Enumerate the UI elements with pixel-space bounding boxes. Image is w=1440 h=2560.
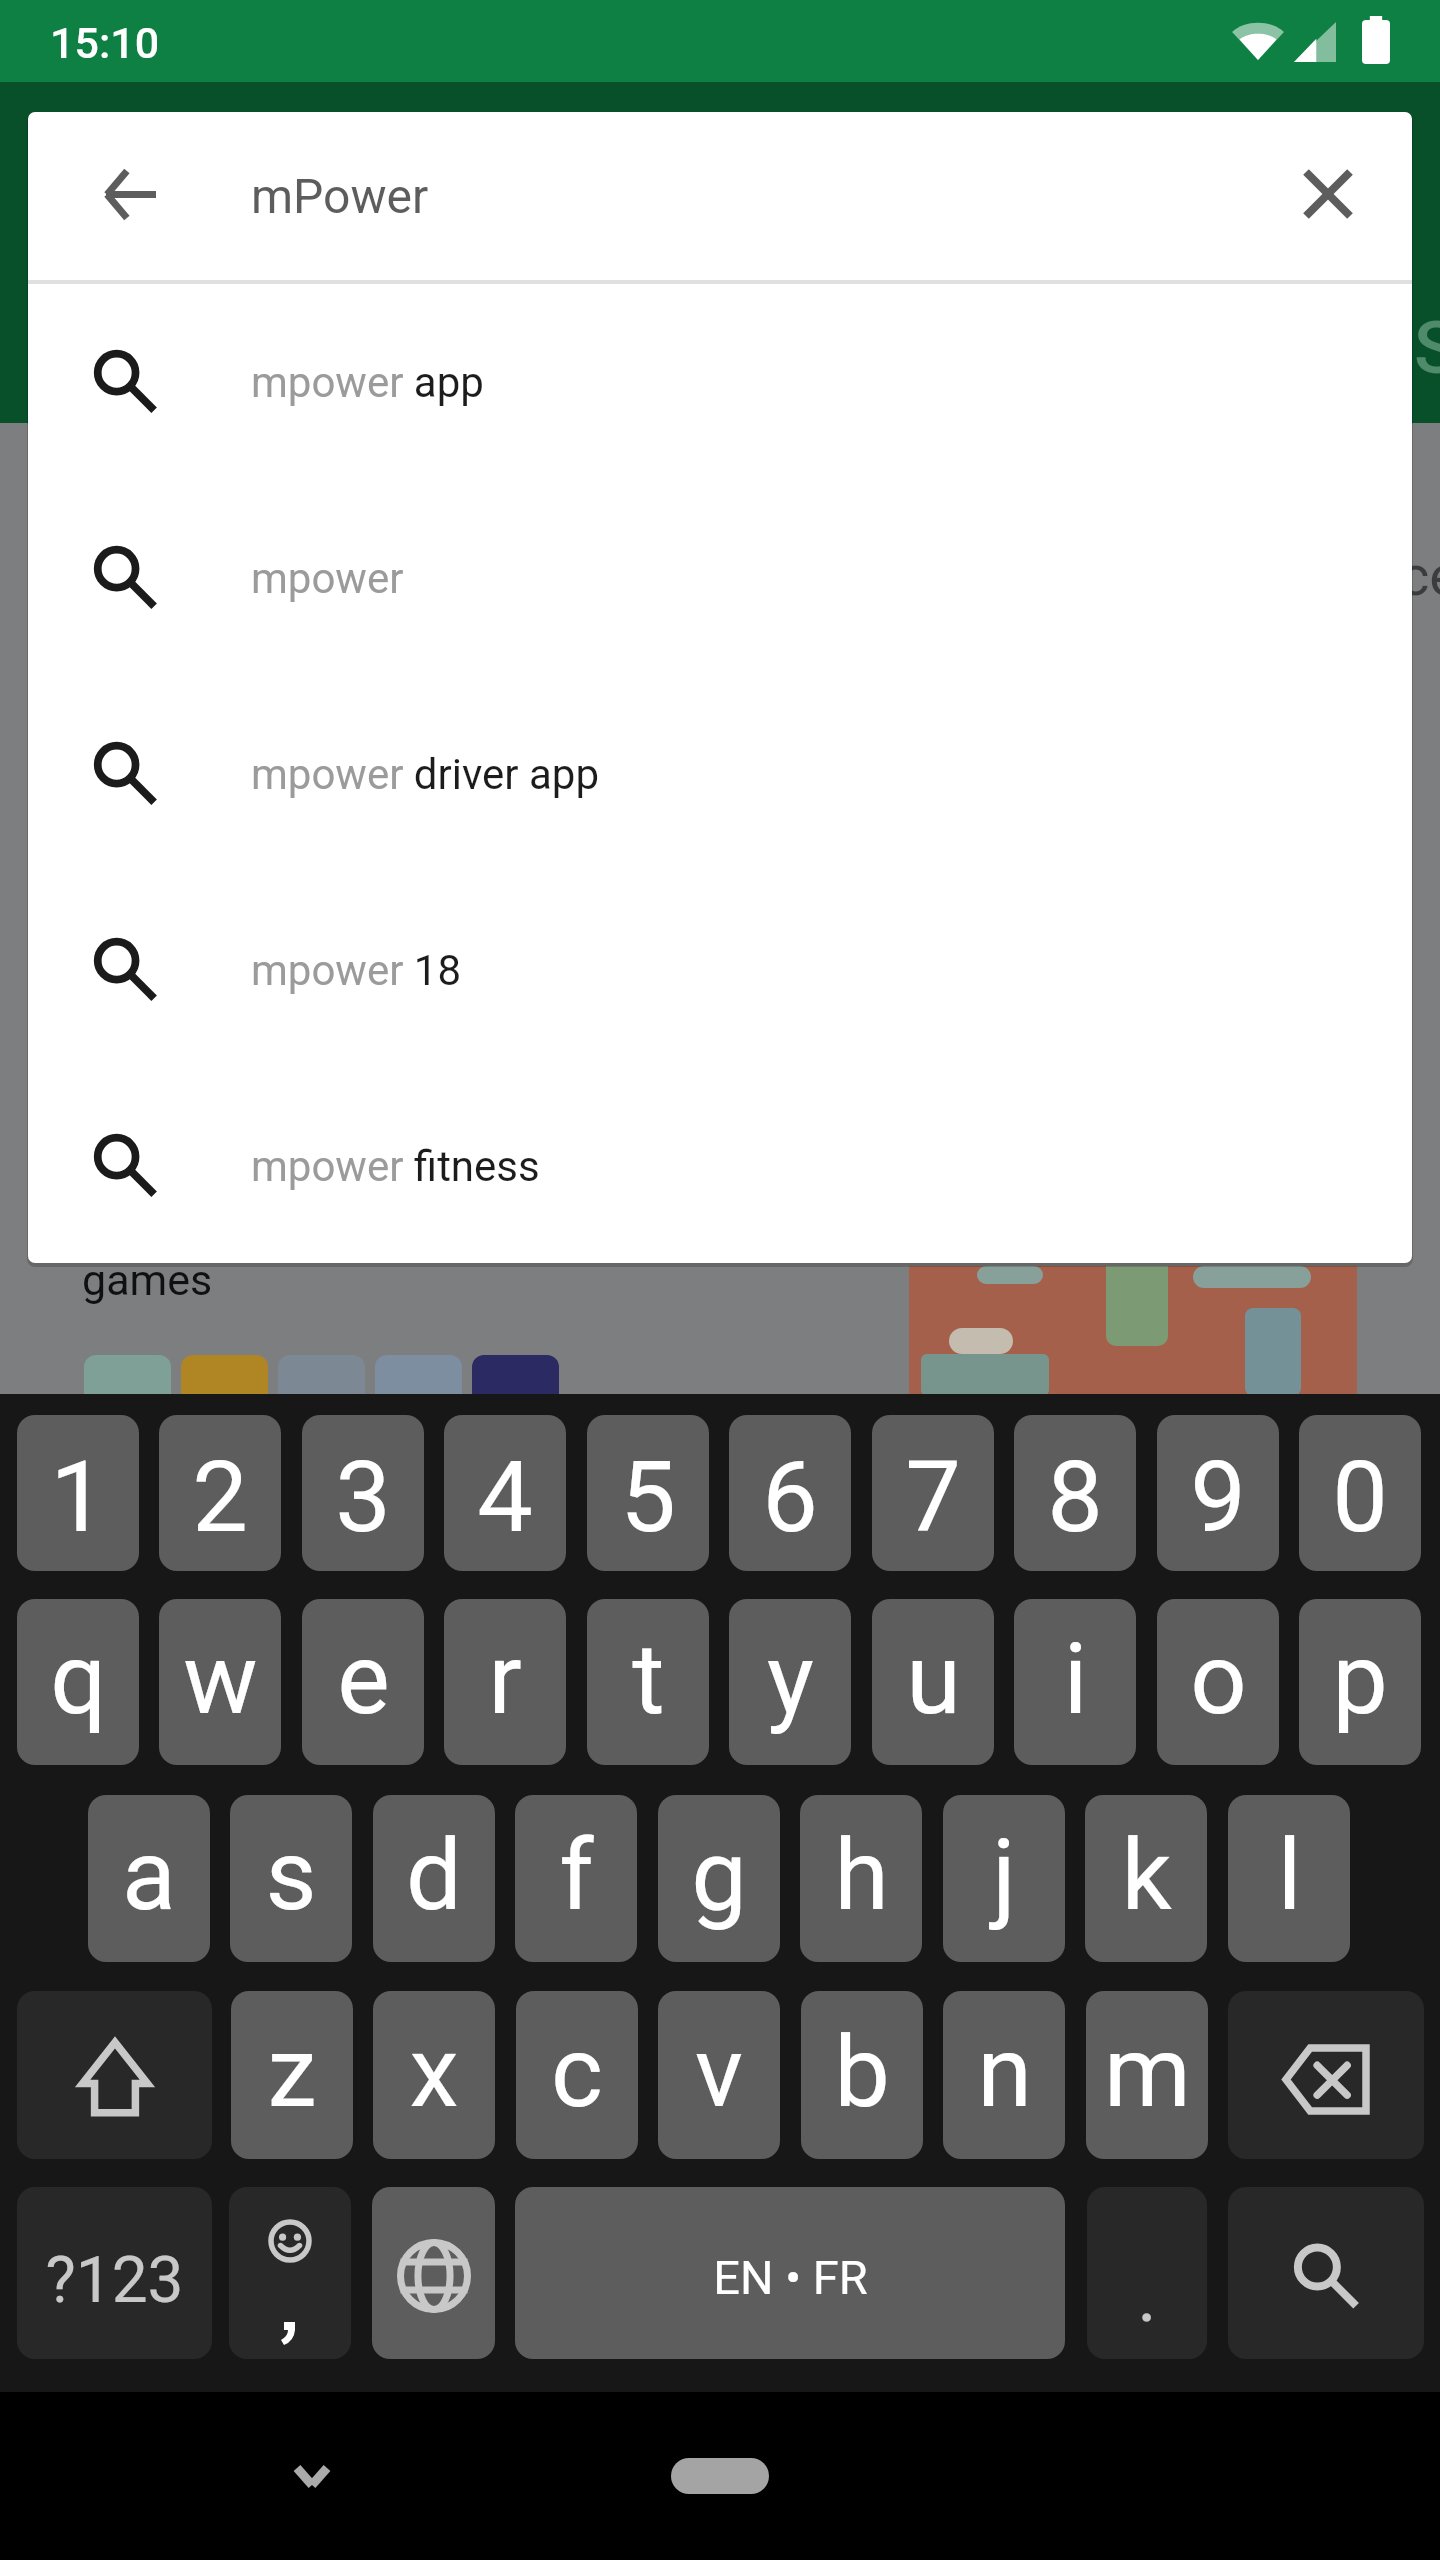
button[interactable]: a (88, 1795, 210, 1962)
staticText: w (183, 1621, 258, 1737)
staticText: b (834, 2014, 890, 2130)
staticText: k (1121, 1817, 1172, 1933)
staticText: c (551, 2014, 603, 2130)
staticText: ce (1400, 543, 1440, 609)
button[interactable]: p (1299, 1599, 1421, 1765)
button[interactable]: 6 (729, 1415, 851, 1571)
staticText: g (691, 1817, 747, 1933)
staticText: t (632, 1621, 665, 1737)
button[interactable]: Hide keyboard (252, 2416, 372, 2536)
staticText: 2 (192, 1439, 248, 1555)
staticText: S (1414, 306, 1440, 390)
button[interactable]: mpower 18 (28, 872, 1412, 1068)
button[interactable]: l (1228, 1795, 1350, 1962)
staticText: v (695, 2014, 743, 2130)
staticText: 6 (762, 1439, 818, 1555)
button[interactable]: mpower (28, 480, 1412, 676)
staticText: 5 (620, 1439, 676, 1555)
staticText: d (406, 1817, 462, 1933)
staticText: 9 (1190, 1439, 1246, 1555)
button[interactable]: 4 (444, 1415, 566, 1571)
staticText: h (834, 1817, 889, 1933)
staticText: games (82, 1255, 213, 1305)
button[interactable]: mpower app (28, 284, 1412, 480)
button[interactable]: mpower fitness (28, 1068, 1412, 1263)
button[interactable]: y (729, 1599, 851, 1765)
button[interactable]: Home (671, 2458, 769, 2494)
button[interactable]: w (159, 1599, 281, 1765)
button[interactable]: e (302, 1599, 424, 1765)
staticText: m (1104, 2014, 1191, 2130)
button[interactable]: Back (88, 152, 172, 236)
staticText: z (267, 2014, 317, 2130)
button[interactable]: 7 (872, 1415, 994, 1571)
staticText: 3 (335, 1439, 391, 1555)
button[interactable]: x (373, 1991, 495, 2159)
button[interactable]: 2 (159, 1415, 281, 1571)
staticText: ?123 (45, 2243, 184, 2318)
staticText: q (50, 1621, 107, 1737)
staticText: e (337, 1621, 390, 1737)
button[interactable]: s (230, 1795, 352, 1962)
button[interactable]: EN • FR (515, 2187, 1065, 2359)
button[interactable]: g (658, 1795, 780, 1962)
button[interactable]: 9 (1157, 1415, 1279, 1571)
button[interactable]: Shift (17, 1991, 212, 2159)
staticText: 4 (477, 1439, 533, 1555)
staticText: r (488, 1621, 522, 1737)
button[interactable]: mpower driver app (28, 676, 1412, 872)
button[interactable]: n (943, 1991, 1065, 2159)
button[interactable]: t (587, 1599, 709, 1765)
staticText: 7 (905, 1439, 961, 1555)
button[interactable]: Change language (372, 2187, 495, 2359)
button[interactable]: ?123 (17, 2187, 212, 2359)
staticText: x (409, 2014, 459, 2130)
staticText: 15:10 (50, 18, 160, 68)
staticText: mPower (251, 168, 429, 224)
staticText: l (1277, 1817, 1302, 1933)
button[interactable]: v (658, 1991, 780, 2159)
button[interactable]: f (515, 1795, 637, 1962)
staticText: . (1137, 2252, 1157, 2339)
staticText: o (1190, 1621, 1247, 1737)
staticText: mpower fitness (251, 1142, 540, 1191)
staticText: mpower driver app (251, 750, 599, 799)
staticText: p (1332, 1621, 1388, 1737)
button[interactable]: mPower (188, 124, 1268, 268)
button[interactable]: Search (1228, 2187, 1424, 2359)
button[interactable]: r (444, 1599, 566, 1765)
staticText: 8 (1047, 1439, 1103, 1555)
staticText: u (906, 1621, 961, 1737)
staticText: a (122, 1817, 176, 1933)
button[interactable]: k (1085, 1795, 1207, 1962)
staticText: mpower app (251, 358, 484, 407)
button[interactable]: Emoji (229, 2187, 351, 2359)
button[interactable]: m (1086, 1991, 1208, 2159)
button[interactable]: 5 (587, 1415, 709, 1571)
staticText: n (977, 2014, 1032, 2130)
button[interactable]: q (17, 1599, 139, 1765)
staticText: j (992, 1817, 1016, 1933)
staticText: y (767, 1621, 814, 1737)
button[interactable]: Backspace (1228, 1991, 1424, 2159)
staticText: mpower (251, 554, 404, 603)
button[interactable]: b (801, 1991, 923, 2159)
button[interactable]: 8 (1014, 1415, 1136, 1571)
staticText: s (265, 1817, 317, 1933)
button[interactable]: i (1014, 1599, 1136, 1765)
button[interactable]: 0 (1299, 1415, 1421, 1571)
button[interactable]: c (516, 1991, 638, 2159)
button[interactable]: Clear search (1286, 152, 1370, 236)
button[interactable]: u (872, 1599, 994, 1765)
button[interactable]: d (373, 1795, 495, 1962)
button[interactable]: . (1087, 2187, 1207, 2359)
button[interactable]: 3 (302, 1415, 424, 1571)
button[interactable]: h (800, 1795, 922, 1962)
button[interactable]: z (231, 1991, 353, 2159)
button[interactable]: j (943, 1795, 1065, 1962)
staticText: f (559, 1817, 594, 1933)
button[interactable]: o (1157, 1599, 1279, 1765)
staticText: 1 (50, 1439, 106, 1555)
button[interactable]: 1 (17, 1415, 139, 1571)
staticText: mpower 18 (251, 946, 462, 995)
